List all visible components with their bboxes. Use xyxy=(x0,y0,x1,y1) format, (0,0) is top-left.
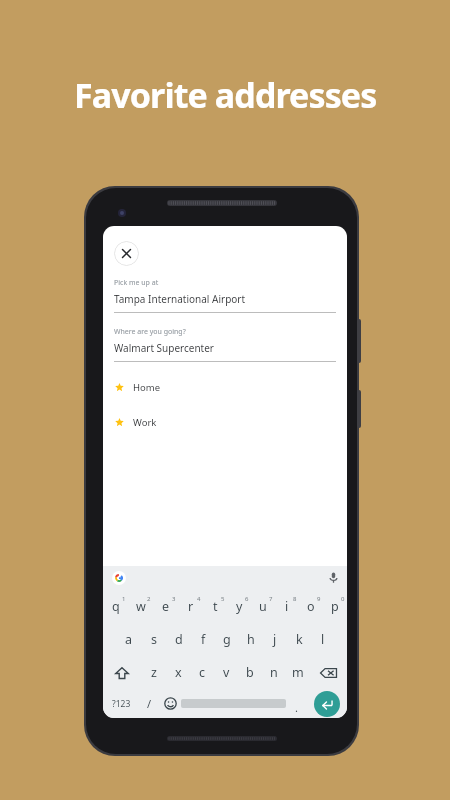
staticText: u xyxy=(259,598,267,615)
staticText: s xyxy=(151,631,157,648)
staticText: b xyxy=(246,664,254,681)
staticText: Home xyxy=(133,381,161,394)
staticText: 7 xyxy=(269,595,273,603)
staticText: Tampa International Airport xyxy=(114,292,246,306)
staticText: m xyxy=(292,664,304,681)
button[interactable]: s xyxy=(141,623,166,656)
staticText: i xyxy=(285,598,289,615)
button[interactable]: ?123 xyxy=(103,689,139,718)
button[interactable]: h xyxy=(239,623,263,656)
button[interactable]: Close xyxy=(114,241,139,266)
button[interactable]: q xyxy=(103,590,128,623)
button[interactable]: z xyxy=(141,656,166,689)
staticText: Work xyxy=(133,416,157,429)
staticText: q xyxy=(112,598,120,615)
button[interactable]: m xyxy=(286,656,310,689)
staticText: r xyxy=(188,598,194,615)
staticText: p xyxy=(331,598,339,615)
staticText: z xyxy=(151,664,157,681)
staticText: c xyxy=(199,664,206,681)
staticText: x xyxy=(175,664,182,681)
button[interactable]: e xyxy=(153,590,178,623)
button[interactable]: k xyxy=(287,623,311,656)
staticText: j xyxy=(273,631,277,648)
button[interactable]: Work xyxy=(103,405,347,440)
staticText: e xyxy=(162,598,170,615)
staticText: a xyxy=(125,631,133,648)
button[interactable]: n xyxy=(262,656,286,689)
button[interactable]: u xyxy=(251,590,275,623)
staticText: / xyxy=(147,696,152,711)
button[interactable]: Shift xyxy=(103,656,141,689)
staticText: 2 xyxy=(147,595,151,603)
staticText: 6 xyxy=(245,595,249,603)
button[interactable]: Home xyxy=(103,370,347,405)
button[interactable]: x xyxy=(166,656,190,689)
staticText: g xyxy=(223,631,231,648)
staticText: d xyxy=(175,631,183,648)
staticText: 4 xyxy=(197,595,201,603)
button[interactable]: c xyxy=(190,656,214,689)
button[interactable]: o xyxy=(299,590,323,623)
button[interactable]: y xyxy=(227,590,251,623)
button[interactable]: / xyxy=(139,689,160,718)
button[interactable]: Enter xyxy=(314,691,340,717)
button[interactable]: w xyxy=(128,590,153,623)
button[interactable]: a xyxy=(116,623,141,656)
staticText: w xyxy=(136,598,146,615)
staticText: ?123 xyxy=(112,698,131,710)
staticText: y xyxy=(236,598,243,615)
button[interactable]: j xyxy=(263,623,287,656)
button[interactable]: f xyxy=(191,623,215,656)
staticText: f xyxy=(201,631,206,648)
button[interactable]: r xyxy=(178,590,203,623)
staticText: Pick me up at xyxy=(114,278,159,288)
staticText: t xyxy=(213,598,218,615)
staticText: Favorite addresses xyxy=(74,72,377,118)
button[interactable]: p xyxy=(323,590,347,623)
staticText: 3 xyxy=(172,595,176,603)
staticText: k xyxy=(296,631,303,648)
button[interactable]: . xyxy=(286,689,307,718)
staticText: Walmart Supercenter xyxy=(114,341,214,355)
button[interactable]: b xyxy=(238,656,262,689)
button[interactable]: Voice input xyxy=(327,571,340,584)
button[interactable]: v xyxy=(214,656,238,689)
staticText: l xyxy=(321,631,325,648)
staticText: 8 xyxy=(293,595,297,603)
staticText: 9 xyxy=(317,595,321,603)
staticText: 5 xyxy=(221,595,225,603)
staticText: n xyxy=(270,664,278,681)
staticText: v xyxy=(223,664,230,681)
button[interactable]: g xyxy=(215,623,239,656)
button[interactable]: Space xyxy=(181,689,286,718)
staticText: 1 xyxy=(122,595,126,603)
staticText: o xyxy=(307,598,315,615)
button[interactable]: t xyxy=(203,590,227,623)
button[interactable]: l xyxy=(311,623,335,656)
button[interactable]: d xyxy=(166,623,191,656)
button[interactable]: Google Assistant xyxy=(112,571,126,585)
staticText: . xyxy=(295,700,298,715)
button[interactable]: Emoji xyxy=(160,689,181,718)
staticText: Where are you going? xyxy=(114,327,186,337)
button[interactable]: i xyxy=(275,590,299,623)
button[interactable]: Backspace xyxy=(310,656,347,689)
staticText: h xyxy=(247,631,255,648)
staticText: 0 xyxy=(341,595,345,603)
